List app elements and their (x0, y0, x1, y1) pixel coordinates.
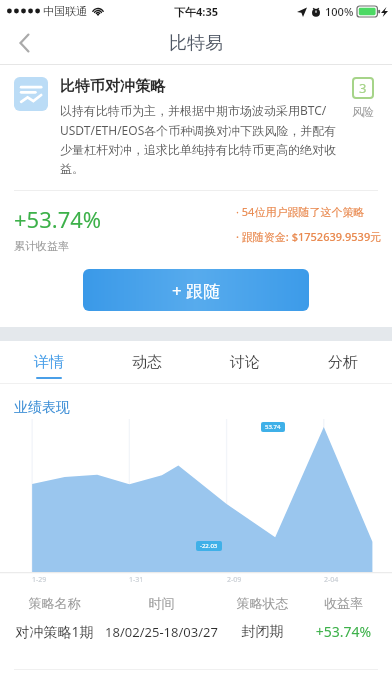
staticText: 业绩表现 (14, 399, 70, 417)
staticText: 中国联通 (43, 4, 87, 18)
button[interactable]: 讨论 (196, 341, 294, 383)
staticText: 讨论 (230, 353, 260, 372)
staticText: 风险 (352, 105, 374, 119)
staticText: 时间 (101, 595, 222, 611)
staticText: 53.74 (265, 423, 281, 431)
staticText: 封闭期 (222, 623, 303, 641)
staticText: 1-31 (129, 575, 144, 585)
staticText: 下午4:35 (174, 4, 218, 19)
staticText: 18/02/25-18/03/27 (101, 623, 222, 641)
staticText: · 54位用户跟随了这个策略 (236, 204, 365, 219)
staticText: -22.03 (200, 542, 218, 550)
staticText: 策略状态 (222, 595, 303, 611)
staticText: 比特易 (169, 32, 223, 55)
staticText: 对冲策略1期 (8, 622, 101, 641)
button[interactable]: 详情 (0, 341, 98, 383)
staticText: 比特币对冲策略 (60, 77, 165, 96)
button[interactable]: 对冲策略1期 (0, 617, 392, 653)
button[interactable]: 分析 (294, 341, 392, 383)
staticText: 策略名称 (8, 595, 101, 611)
staticText: · 跟随资金: $1752639.9539元 (236, 229, 382, 244)
staticText: +53.74% (303, 622, 384, 641)
button[interactable]: 动态 (98, 341, 196, 383)
staticText: 2-09 (227, 575, 242, 585)
staticText: +53.74% (14, 204, 102, 234)
staticText: 收益率 (303, 595, 384, 611)
staticText: 动态 (132, 353, 162, 372)
button[interactable]: Back (0, 22, 48, 64)
staticText: 1-29 (32, 575, 47, 585)
staticText: 3 (359, 79, 367, 97)
staticText: 以持有比特币为主，并根据中期市场波动采用BTC/USDT/ETH/EOS各个币种… (60, 102, 338, 177)
staticText: + 跟随 (172, 279, 221, 302)
button[interactable]: + 跟随 (83, 269, 309, 311)
staticText: 详情 (34, 353, 64, 372)
staticText: 分析 (328, 353, 358, 372)
staticText: 100% (325, 4, 354, 19)
staticText: 2-04 (324, 575, 339, 585)
staticText: 累计收益率 (14, 239, 69, 253)
